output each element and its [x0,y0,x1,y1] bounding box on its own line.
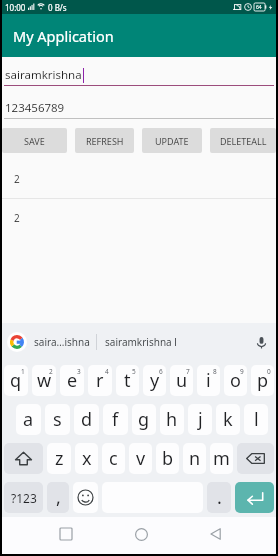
button[interactable]: 2 [2,199,276,237]
button[interactable]: p [251,365,274,396]
button[interactable]: Home [126,519,156,549]
button[interactable]: s [45,404,70,435]
staticText: sairamkrishna [5,67,82,83]
staticText: s [53,407,62,432]
staticText: DELETEALL [220,135,267,147]
button[interactable]: j [188,404,212,435]
button[interactable]: o [224,365,247,396]
button[interactable]: q [4,365,28,396]
staticText: 0 [267,367,271,376]
button[interactable]: a [16,404,41,435]
button[interactable]: t [116,365,139,396]
button[interactable]: REFRESH [75,128,134,153]
staticText: REFRESH [86,135,124,147]
button[interactable]: d [74,404,99,435]
button[interactable]: k [216,404,240,435]
staticText: 3 [77,367,81,376]
staticText: 123456789 [5,100,65,116]
button[interactable]: Enter [235,482,274,513]
staticText: ?123 [11,490,37,506]
button[interactable]: ?123 [4,482,43,513]
staticText: , [56,485,61,510]
button[interactable]: w [32,365,56,396]
staticText: e [67,368,78,393]
staticText: g [138,407,150,432]
staticText: 0 B/s [48,2,67,13]
button[interactable]: DELETEALL [210,128,276,153]
button[interactable]: . [207,482,231,513]
staticText: w [37,368,52,393]
staticText: UPDATE [155,135,189,147]
button[interactable]: z [47,443,71,474]
staticText: d [81,407,93,432]
staticText: 7 [186,367,190,376]
button[interactable]: Google [7,332,27,352]
button[interactable]: b [156,443,179,474]
staticText: 2 [14,172,20,186]
staticText: l [254,407,259,432]
button[interactable]: m [210,443,233,474]
staticText: sairamkrishna l [105,335,177,349]
staticText: 2 [49,367,53,376]
button[interactable]: u [170,365,193,396]
staticText: x [82,446,92,471]
button[interactable]: 123456789 [5,98,274,118]
button[interactable]: r [88,365,112,396]
staticText: 64 [256,4,262,11]
staticText: f [112,407,119,432]
button[interactable]: 2 [2,160,276,198]
staticText: 1 [21,367,25,376]
button[interactable]: i [197,365,220,396]
button[interactable]: Recents [51,519,81,549]
staticText: 6 [159,367,163,376]
staticText: 4 [105,367,109,376]
staticText: c [109,446,118,471]
staticText: t [124,368,131,393]
staticText: 10:00 [5,2,26,13]
staticText: y [150,368,160,393]
button[interactable]: h [160,404,184,435]
staticText: r [96,368,104,393]
button[interactable]: Voice input [248,323,274,361]
staticText: p [257,368,269,393]
button[interactable]: f [103,404,128,435]
button[interactable]: , [47,482,69,513]
staticText: . [217,485,222,510]
button[interactable]: g [132,404,156,435]
button[interactable]: v [129,443,152,474]
button[interactable]: sairamkrishna l [97,323,185,361]
staticText: a [23,407,34,432]
staticText: SAVE [24,135,45,147]
button[interactable]: sairamkrishna [5,64,274,85]
button[interactable]: Shift [4,443,43,474]
staticText: o [230,368,241,393]
button[interactable]: Back [201,519,231,549]
button[interactable]: saira…ishna [27,323,96,361]
staticText: m [213,446,230,471]
button[interactable]: x [75,443,98,474]
button[interactable]: e [60,365,84,396]
staticText: 2 [14,211,20,225]
staticText: z [55,446,64,471]
button[interactable] [73,482,98,513]
staticText: My Application [13,26,114,46]
staticText: k [223,407,233,432]
staticText: n [189,446,201,471]
staticText: 5 [132,367,136,376]
staticText: b [162,446,174,471]
button[interactable]: Backspace [237,443,274,474]
button[interactable]: y [143,365,166,396]
button[interactable]: l [244,404,268,435]
staticText: q [10,368,22,393]
staticText: u [176,368,188,393]
button[interactable]: SAVE [2,128,67,153]
staticText: h [166,407,178,432]
other: Cast [233,3,241,11]
button[interactable]: UPDATE [142,128,202,153]
staticText: 8 [213,367,217,376]
staticText: 9 [240,367,244,376]
button[interactable]: c [102,443,125,474]
button[interactable]: n [183,443,206,474]
staticText: v [136,446,146,471]
